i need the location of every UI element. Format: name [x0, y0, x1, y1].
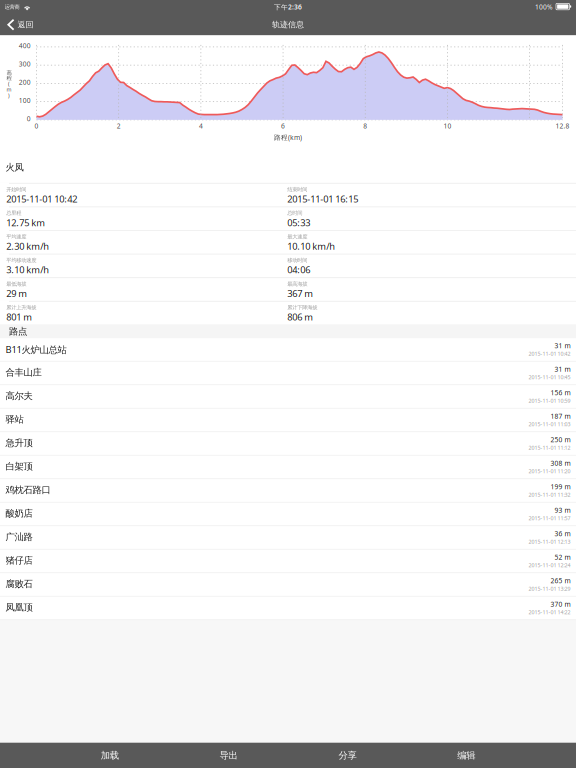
staticText: 广汕路 [5, 531, 32, 543]
staticText: 加载 [101, 750, 119, 761]
staticText: 31 m [554, 341, 570, 350]
staticText: 2015-11-01 10:42 [6, 193, 77, 205]
staticText: 结束时间 [287, 186, 307, 193]
staticText: 400 [19, 41, 31, 50]
staticText: 总时间 [287, 210, 302, 216]
staticText: 凤凰顶 [5, 602, 32, 613]
staticText: 分享 [338, 750, 356, 761]
staticText: 返回 [17, 20, 33, 30]
button[interactable]: 酸奶店 [0, 503, 576, 526]
button[interactable]: 驿站 [0, 409, 576, 432]
staticText: 12.75 km [6, 216, 45, 229]
button[interactable]: 返回 [0, 14, 33, 35]
staticText: 3.10 km/h [6, 264, 49, 276]
staticText: 6 [281, 121, 285, 130]
staticText: 29 m [6, 287, 27, 300]
button[interactable]: 白架顶 [0, 456, 576, 479]
button[interactable]: 分享 [338, 743, 356, 768]
staticText: 93 m [554, 506, 570, 515]
staticText: 10.10 km/h [287, 240, 335, 252]
staticText: 12.8 [555, 121, 569, 130]
staticText: 白架顶 [5, 461, 32, 472]
staticText: 156 m [550, 388, 570, 397]
staticText: 2015-11-01 10:42 [528, 350, 570, 357]
staticText: 最大速度 [287, 233, 307, 240]
staticText: m [6, 86, 11, 93]
staticText: 300 [19, 60, 31, 68]
button[interactable]: 鸡枕石路口 [0, 479, 576, 503]
staticText: 累计上升海拔 [6, 304, 36, 311]
staticText: 猪仔店 [5, 555, 32, 566]
staticText: 2.30 km/h [6, 240, 49, 252]
staticText: 8 [363, 121, 367, 130]
staticText: 鸡枕石路口 [5, 484, 50, 496]
staticText: 100% [535, 3, 553, 11]
staticText: 累计下降海拔 [287, 304, 317, 311]
staticText: 酸奶店 [5, 508, 32, 519]
button[interactable]: B11火炉山总站 [0, 338, 576, 362]
button[interactable]: 加载 [101, 743, 119, 768]
staticText: 52 m [554, 553, 570, 562]
staticText: 高尔夫 [5, 390, 32, 402]
staticText: 806 m [287, 311, 313, 323]
staticText: 腐败石 [5, 578, 32, 590]
staticText: 367 m [287, 287, 313, 300]
staticText: 路点 [9, 326, 27, 337]
staticText: 最高海拔 [287, 281, 307, 287]
staticText: 2015-11-01 12:13 [528, 538, 570, 545]
staticText: 05:33 [287, 216, 310, 229]
staticText: 导出 [220, 750, 238, 761]
staticText: 开始时间 [6, 186, 26, 193]
staticText: 250 m [550, 435, 570, 444]
staticText: 10 [443, 121, 451, 130]
staticText: 2015-11-01 11:32 [528, 491, 570, 498]
staticText: 200 [19, 78, 31, 87]
staticText: 308 m [550, 459, 570, 468]
button[interactable]: 编辑 [457, 743, 475, 768]
button[interactable]: 凤凰顶 [0, 597, 576, 620]
staticText: 运营商 [4, 4, 19, 10]
staticText: 04:06 [287, 264, 310, 276]
staticText: 2 [117, 121, 121, 130]
staticText: 2015-11-01 16:15 [287, 193, 358, 205]
staticText: 2015-11-01 11:20 [528, 468, 570, 475]
staticText: 高 [6, 69, 11, 76]
staticText: 199 m [550, 482, 570, 491]
staticText: 0 [34, 121, 38, 130]
staticText: 2015-11-01 10:45 [528, 374, 570, 381]
staticText: 2015-11-01 14:22 [528, 609, 570, 616]
staticText: 2015-11-01 10:59 [528, 397, 570, 404]
staticText: 平均移动速度 [6, 257, 36, 264]
staticText: 火凤 [5, 162, 23, 173]
staticText: 36 m [554, 529, 570, 538]
button[interactable]: 合丰山庄 [0, 362, 576, 385]
button[interactable]: 导出 [220, 743, 238, 768]
staticText: 2015-11-01 13:29 [528, 585, 570, 592]
staticText: ( [8, 80, 10, 87]
staticText: 2015-11-01 11:57 [528, 515, 570, 522]
staticText: 187 m [550, 412, 570, 421]
staticText: 最低海拔 [6, 281, 26, 287]
staticText: 801 m [6, 311, 32, 323]
staticText: B11火炉山总站 [5, 343, 66, 356]
staticText: 程 [6, 75, 11, 81]
staticText: 路程(km) [274, 133, 302, 142]
staticText: 移动时间 [287, 257, 307, 264]
button[interactable]: 腐败石 [0, 573, 576, 597]
staticText: 编辑 [457, 750, 475, 761]
staticText: 100 [19, 96, 31, 105]
staticText: 4 [199, 121, 203, 130]
staticText: 2015-11-01 12:24 [528, 562, 570, 569]
button[interactable]: 猪仔店 [0, 550, 576, 573]
staticText: ) [8, 92, 10, 99]
staticText: 2015-11-01 11:12 [528, 444, 570, 451]
staticText: 平均速度 [6, 233, 26, 240]
staticText: 265 m [550, 576, 570, 585]
button[interactable]: 广汕路 [0, 526, 576, 550]
staticText: 2015-11-01 11:03 [528, 421, 570, 428]
button[interactable]: 急升顶 [0, 432, 576, 456]
staticText: 31 m [554, 365, 570, 374]
button[interactable]: 高尔夫 [0, 385, 576, 409]
staticText: 急升顶 [5, 437, 32, 449]
staticText: 轨迹信息 [272, 20, 304, 30]
